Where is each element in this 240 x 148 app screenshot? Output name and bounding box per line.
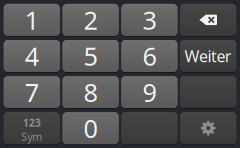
staticText: 7 [25, 75, 39, 109]
staticText: 1 [25, 3, 39, 37]
button[interactable]: Settings [180, 112, 236, 144]
staticText: 0 [84, 111, 98, 145]
staticText: 8 [84, 75, 98, 109]
staticText: Sym [21, 130, 42, 144]
button[interactable]: 2 [62, 4, 119, 36]
staticText: Weiter [185, 45, 232, 66]
button[interactable]: 7 [4, 76, 60, 108]
button[interactable]: 123 [4, 112, 60, 144]
staticText: 5 [84, 39, 98, 73]
button[interactable]: 4 [4, 40, 60, 72]
staticText: 123 [23, 115, 41, 130]
staticText: 6 [142, 39, 156, 73]
button[interactable]: 6 [121, 40, 177, 72]
staticText: 4 [25, 39, 39, 73]
button[interactable]: 8 [62, 76, 119, 108]
staticText: 9 [142, 75, 156, 109]
staticText: 2 [84, 3, 98, 37]
button[interactable]: 3 [121, 4, 177, 36]
button[interactable]: Weiter [180, 40, 236, 72]
button[interactable]: 9 [121, 76, 177, 108]
staticText: 3 [142, 3, 156, 37]
button[interactable]: 0 [62, 112, 119, 144]
button[interactable]: Blank key [121, 112, 177, 144]
button[interactable]: 5 [62, 40, 119, 72]
button[interactable]: 1 [4, 4, 60, 36]
button[interactable]: Blank key [180, 76, 236, 108]
button[interactable]: Delete [180, 4, 236, 36]
